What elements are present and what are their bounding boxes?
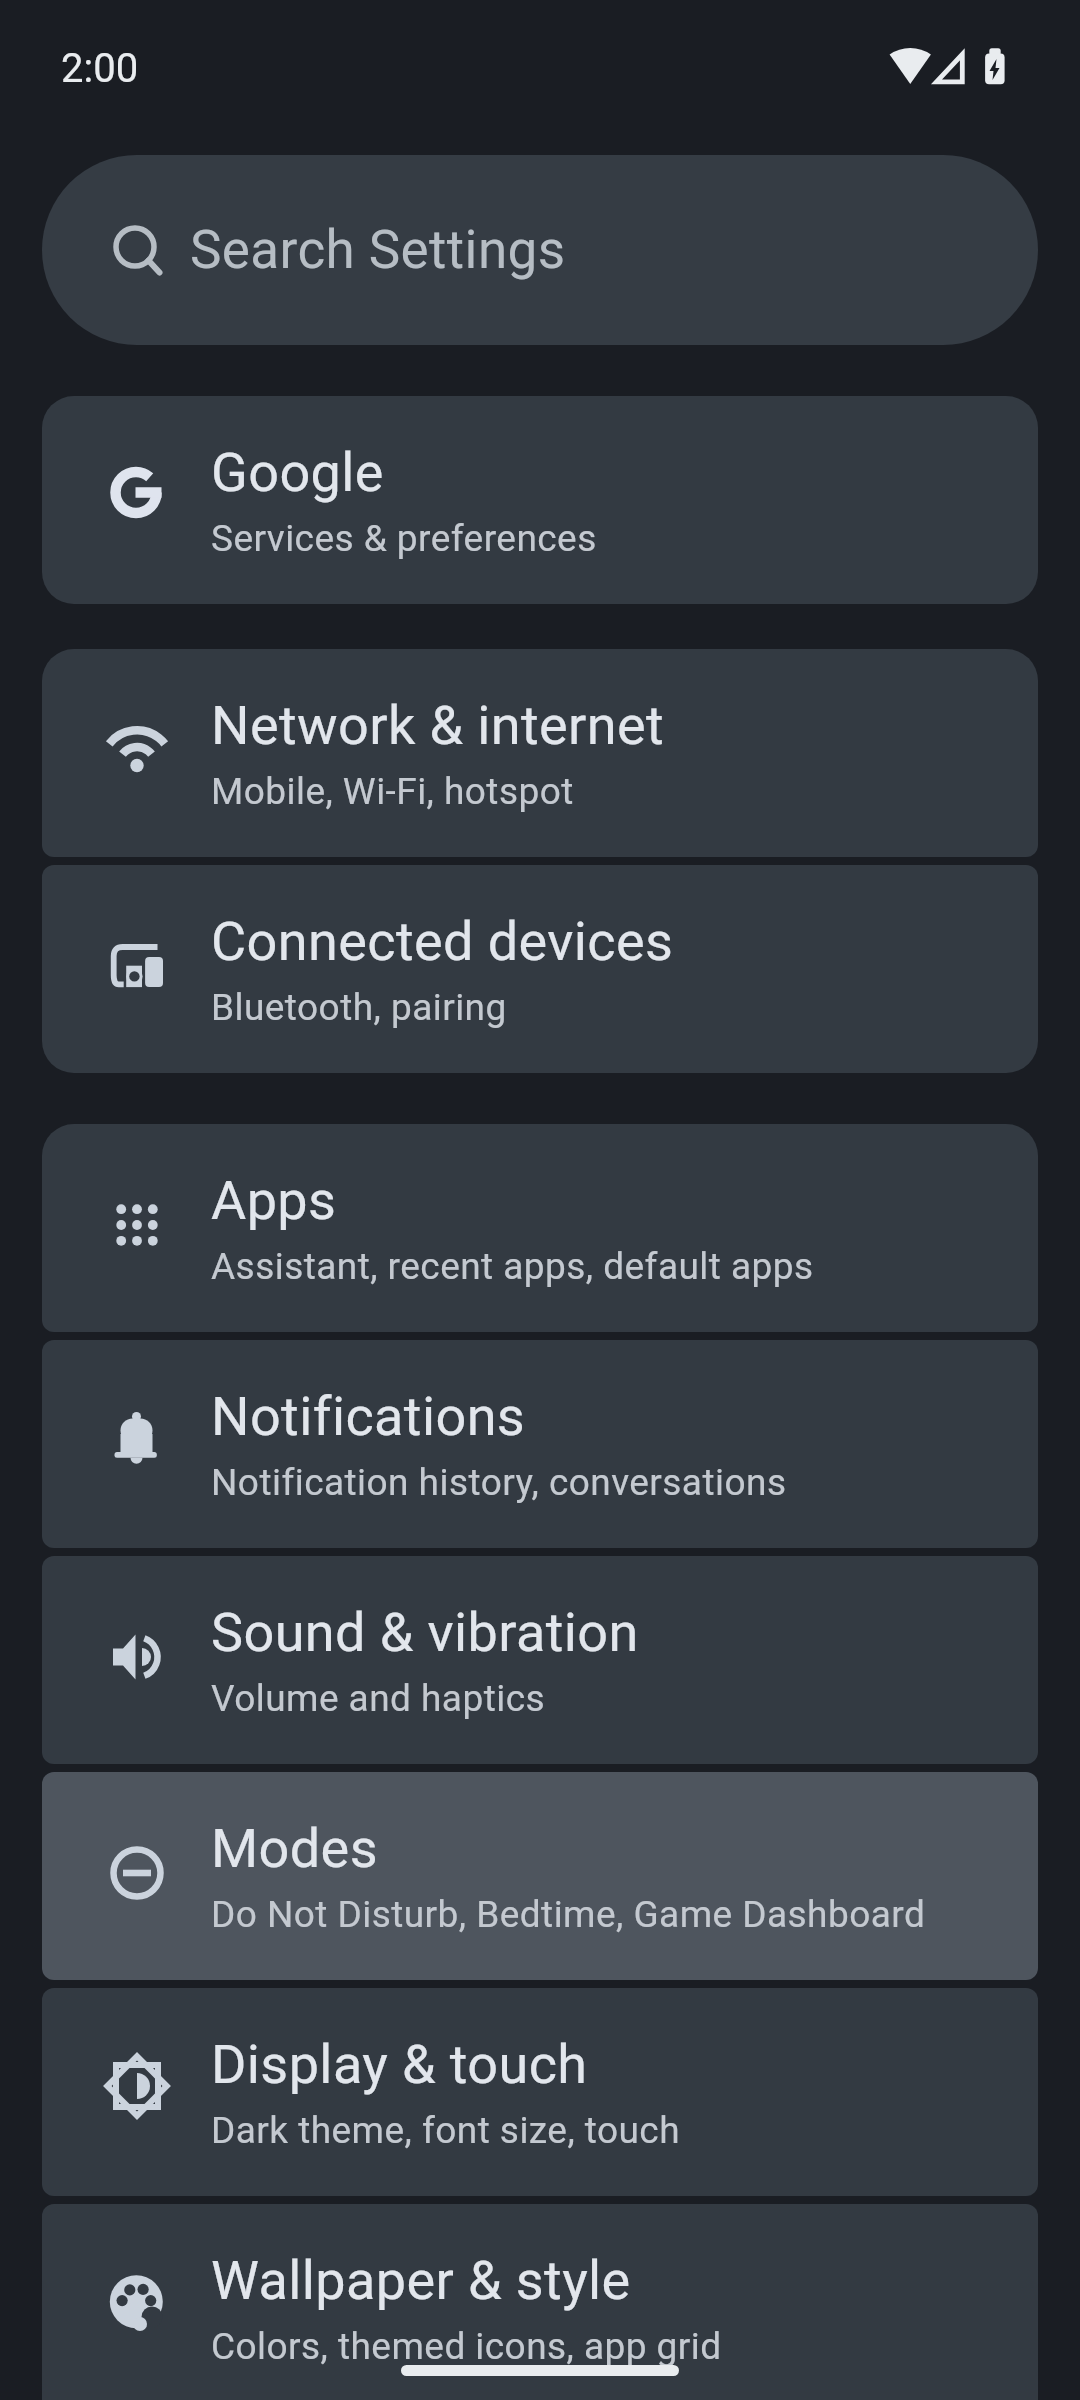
staticText: Colors, themed icons, app grid <box>211 2325 722 2368</box>
button[interactable]: Google <box>42 396 1038 604</box>
staticText: Modes <box>211 1817 378 1880</box>
staticText: Sound & vibration <box>211 1601 639 1664</box>
staticText: Connected devices <box>211 910 674 973</box>
staticText: Mobile, Wi-Fi, hotspot <box>211 770 574 813</box>
staticText: Network & internet <box>211 694 665 757</box>
button[interactable]: Wallpaper & style <box>42 2204 1038 2400</box>
staticText: Assistant, recent apps, default apps <box>211 1245 814 1288</box>
button[interactable]: Notifications <box>42 1340 1038 1548</box>
staticText: Apps <box>211 1169 337 1232</box>
staticText: Google <box>211 441 384 504</box>
staticText: Notifications <box>211 1385 526 1448</box>
staticText: Volume and haptics <box>211 1677 546 1720</box>
staticText: Wallpaper & style <box>211 2249 631 2312</box>
button[interactable]: Search Settings <box>42 155 1038 345</box>
button[interactable]: Sound & vibration <box>42 1556 1038 1764</box>
staticText: Bluetooth, pairing <box>211 986 507 1029</box>
staticText: Do Not Disturb, Bedtime, Game Dashboard <box>211 1893 926 1936</box>
staticText: Notification history, conversations <box>211 1461 787 1504</box>
staticText: 2:00 <box>61 45 139 92</box>
staticText: Display & touch <box>211 2033 588 2096</box>
button[interactable]: Connected devices <box>42 865 1038 1073</box>
staticText: Dark theme, font size, touch <box>211 2109 681 2152</box>
button[interactable]: Apps <box>42 1124 1038 1332</box>
staticText: Services & preferences <box>211 517 597 560</box>
staticText: Search Settings <box>190 219 566 281</box>
button[interactable]: Display & touch <box>42 1988 1038 2196</box>
button[interactable]: Network & internet <box>42 649 1038 857</box>
button[interactable]: Modes <box>42 1772 1038 1980</box>
